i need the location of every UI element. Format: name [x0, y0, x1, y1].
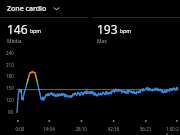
other: Change zone [52, 4, 61, 13]
staticText: bpm [120, 28, 131, 35]
staticText: bpm [30, 28, 41, 35]
staticText: Max [97, 38, 107, 43]
staticText: Zone cardio [7, 4, 47, 14]
staticText: 146 [7, 21, 28, 37]
button[interactable]: 146 [0, 18, 90, 43]
staticText: 193 [97, 21, 118, 37]
staticText: Média [7, 38, 22, 43]
button[interactable]: 193 [90, 18, 180, 43]
button[interactable]: Heart rate chart [0, 43, 180, 135]
button[interactable]: Zone cardio [0, 0, 180, 17]
